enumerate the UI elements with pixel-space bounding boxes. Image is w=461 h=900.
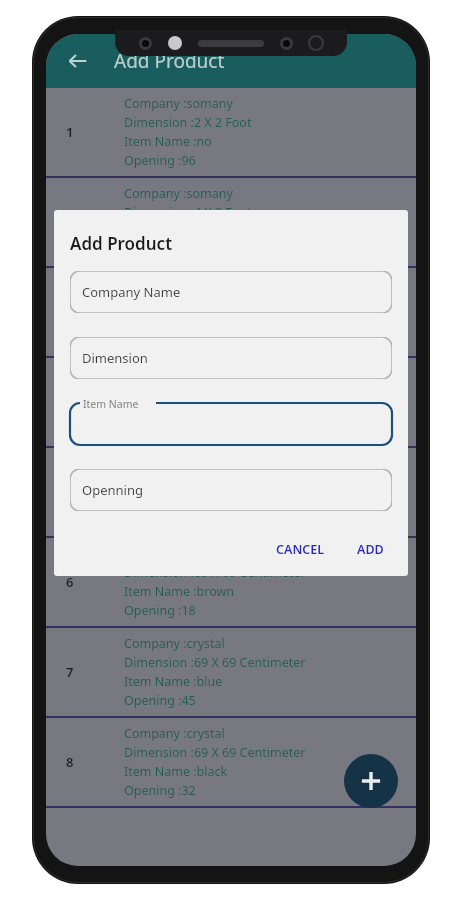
staticText: Item Name :blue bbox=[124, 673, 223, 690]
staticText: Dimension :4 X 2 Foot bbox=[124, 204, 252, 221]
staticText: 6 bbox=[66, 573, 74, 591]
staticText: 7 bbox=[66, 663, 74, 681]
staticText: Dimension bbox=[82, 349, 148, 367]
button[interactable]: 8 bbox=[46, 718, 416, 806]
staticText: ADD bbox=[357, 541, 384, 558]
button[interactable]: Back bbox=[60, 43, 96, 79]
staticText: Company :kajaria bbox=[124, 365, 226, 382]
staticText: Add Product bbox=[114, 48, 225, 74]
button[interactable]: Item Name bbox=[70, 403, 392, 445]
button[interactable]: ADD bbox=[349, 533, 392, 566]
staticText: Item Name :red bbox=[124, 223, 217, 240]
staticText: Company :crystal bbox=[124, 455, 225, 472]
staticText: Dimension :69 X 69 Centimeter bbox=[124, 564, 306, 581]
button[interactable]: 3 bbox=[46, 268, 416, 356]
button[interactable]: CANCEL bbox=[268, 533, 333, 566]
staticText: Company :somany bbox=[124, 95, 233, 112]
staticText: Opening :18 bbox=[124, 602, 196, 619]
staticText: Item Name :green bbox=[124, 493, 232, 510]
staticText: Company :somany bbox=[124, 185, 233, 202]
button[interactable]: 7 bbox=[46, 628, 416, 716]
staticText: Dimension :69 X 69 Centimeter bbox=[124, 474, 306, 491]
button[interactable]: 5 bbox=[46, 448, 416, 536]
staticText: Opening :45 bbox=[124, 692, 196, 709]
staticText: Add Product bbox=[70, 232, 173, 255]
staticText: CANCEL bbox=[276, 541, 325, 558]
staticText: 8 bbox=[66, 753, 74, 771]
staticText: Item Name :brown bbox=[124, 583, 235, 600]
button[interactable]: Company Name bbox=[70, 271, 392, 313]
staticText: Opening :12 bbox=[124, 242, 196, 259]
staticText: Opening :32 bbox=[124, 782, 196, 799]
staticText: Dimension :2 X 2 Foot bbox=[124, 114, 252, 131]
staticText: Item Name :black bbox=[124, 763, 228, 780]
staticText: Company Name bbox=[82, 283, 181, 301]
staticText: Item Name :no bbox=[124, 133, 212, 150]
staticText: 5 bbox=[66, 483, 74, 501]
button[interactable]: Openning bbox=[70, 469, 392, 511]
staticText: Company :crystal bbox=[124, 635, 225, 652]
staticText: Item Name bbox=[83, 397, 139, 411]
staticText: Opening :96 bbox=[124, 152, 196, 169]
button[interactable]: 6 bbox=[46, 538, 416, 626]
staticText: Company :crystal bbox=[124, 725, 225, 742]
staticText: Openning bbox=[82, 481, 143, 499]
button[interactable]: 1 bbox=[46, 88, 416, 176]
staticText: 4 bbox=[66, 393, 74, 411]
staticText: Item Name :grey bbox=[124, 403, 223, 420]
staticText: 1 bbox=[66, 123, 74, 141]
staticText: 3 bbox=[66, 303, 74, 321]
button[interactable]: 2 bbox=[46, 178, 416, 266]
button[interactable]: 4 bbox=[46, 358, 416, 446]
staticText: Dimension :69 X 69 Centimeter bbox=[124, 744, 306, 761]
staticText: Dimension :69 X 69 Centimeter bbox=[124, 654, 306, 671]
staticText: Dimension :2 X 2 Foot bbox=[124, 294, 252, 311]
staticText: Company :kajaria bbox=[124, 275, 226, 292]
staticText: Opening :60 bbox=[124, 332, 196, 349]
button[interactable]: Add bbox=[344, 754, 398, 808]
button[interactable]: Dimension bbox=[70, 337, 392, 379]
